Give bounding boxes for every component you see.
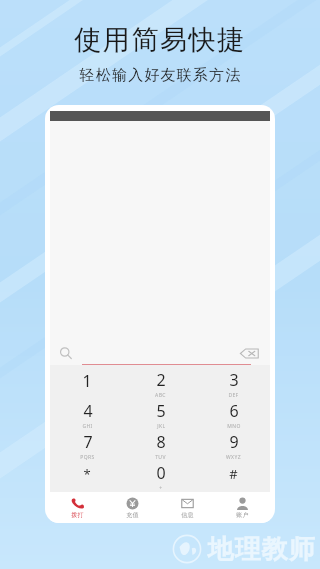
button[interactable]: Search contacts (50, 342, 270, 365)
staticText: DEF (228, 392, 239, 399)
staticText: 1 (82, 370, 92, 392)
button[interactable]: 充值 (105, 492, 160, 523)
button[interactable]: * (50, 461, 124, 492)
staticText: 轻松输入好友联系方法 (79, 66, 241, 85)
staticText: ABC (155, 392, 166, 399)
button[interactable]: 1 (50, 368, 124, 399)
staticText: 8 (156, 431, 166, 453)
staticText: 3 (229, 369, 239, 391)
staticText: 2 (156, 369, 166, 391)
staticText: TUV (155, 454, 166, 461)
button[interactable]: 账户 (215, 492, 270, 523)
button[interactable]: 8 (124, 430, 197, 461)
staticText: PQRS (80, 454, 95, 461)
staticText: 7 (83, 431, 93, 453)
button[interactable]: 信息 (160, 492, 215, 523)
staticText: * (83, 465, 91, 483)
button[interactable]: Search contacts (58, 346, 73, 361)
button[interactable]: 4 (50, 399, 124, 430)
button[interactable]: 7 (50, 430, 124, 461)
button[interactable]: 9 (197, 430, 270, 461)
staticText: JKL (157, 423, 166, 430)
staticText: 6 (229, 400, 239, 422)
staticText: 账户 (236, 511, 249, 519)
button[interactable]: 3 (197, 368, 270, 399)
staticText: 4 (83, 400, 93, 422)
staticText: GHI (82, 423, 93, 430)
staticText: MNO (227, 423, 241, 430)
staticText: 信息 (181, 511, 194, 519)
staticText: + (159, 485, 163, 492)
staticText: 使用简易快捷 (74, 23, 246, 57)
staticText: 9 (229, 431, 239, 453)
staticText: 拨打 (71, 511, 84, 519)
staticText: # (229, 465, 238, 483)
staticText: 0 (156, 462, 166, 484)
button[interactable]: Backspace (240, 347, 259, 360)
button[interactable]: 5 (124, 399, 197, 430)
staticText: 充值 (126, 511, 139, 519)
button[interactable]: 6 (197, 399, 270, 430)
staticText: 地理教师 (207, 533, 315, 566)
staticText: WXYZ (226, 454, 241, 461)
button[interactable]: # (197, 461, 270, 492)
button[interactable]: 0 (124, 461, 197, 492)
button[interactable]: 拨打 (50, 492, 105, 523)
button[interactable]: 2 (124, 368, 197, 399)
staticText: 5 (156, 400, 166, 422)
